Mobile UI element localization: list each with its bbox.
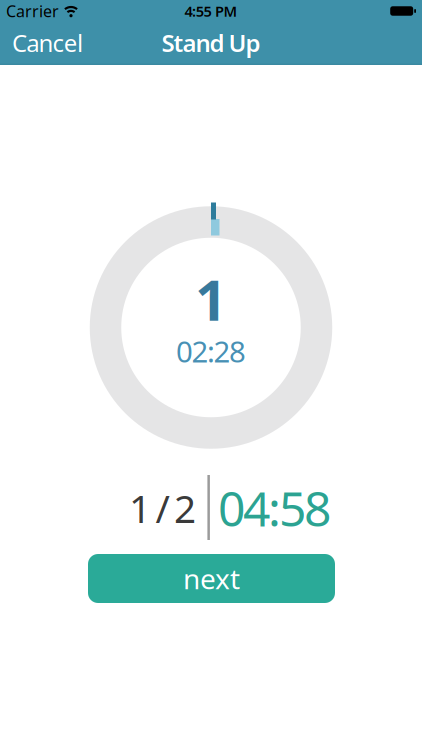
staticText: / [155,482,169,534]
staticText: next [183,560,240,597]
button[interactable]: next [88,554,335,603]
staticText: 4:55 PM [184,1,238,21]
staticText: 1 [195,262,227,336]
staticText: Carrier [6,0,59,22]
staticText: Cancel [12,27,83,59]
staticText: Stand Up [161,27,260,59]
staticText: 2 [174,482,196,534]
button[interactable]: Cancel [12,27,83,59]
staticText: 04:58 [218,476,331,540]
staticText: 1 [129,482,151,534]
staticText: 02:28 [176,331,246,370]
